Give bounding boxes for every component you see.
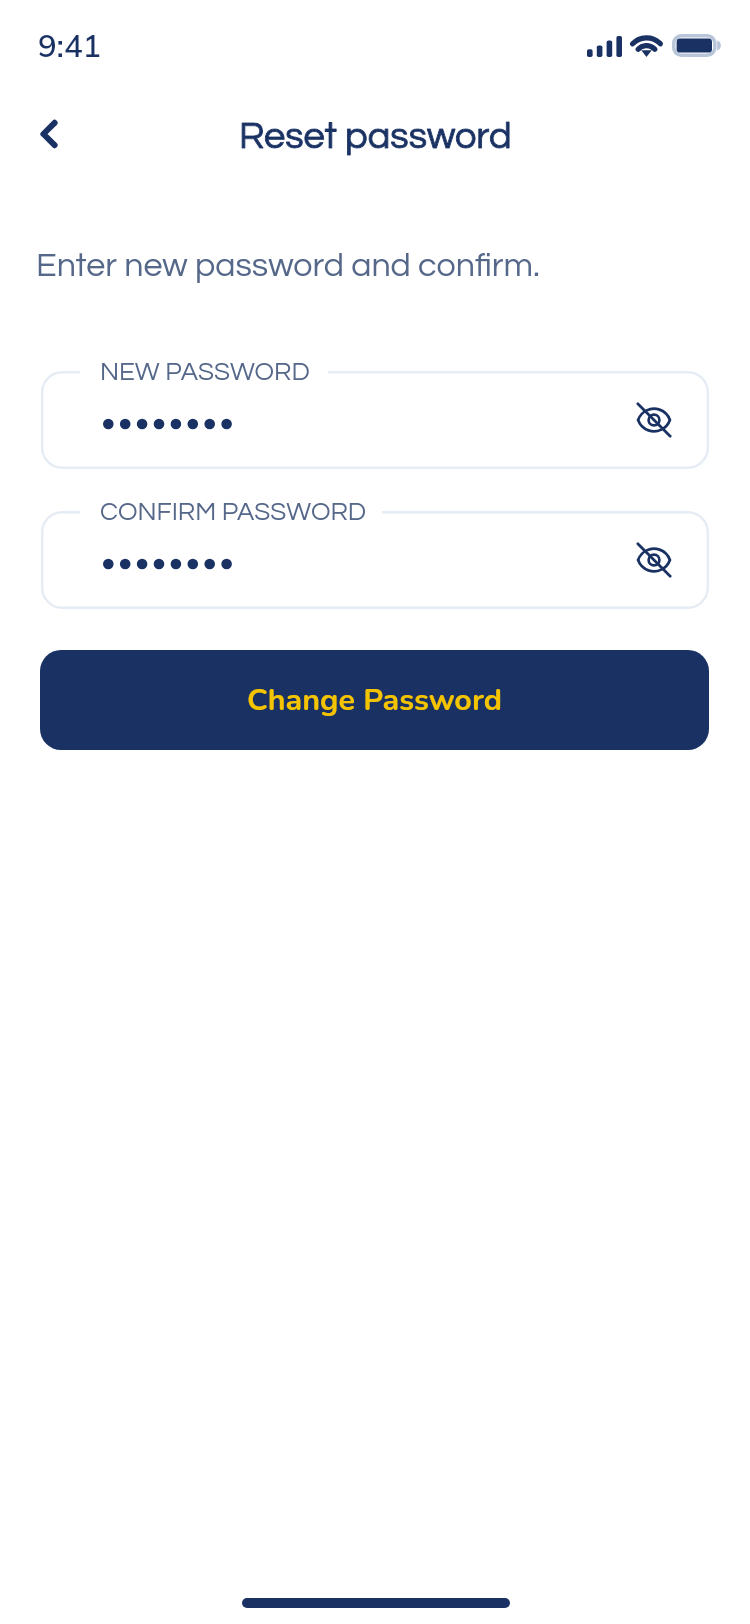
- staticText: Reset password: [239, 117, 512, 156]
- staticText: Enter new password and confirm.: [36, 248, 541, 283]
- button[interactable]: Back: [21, 106, 77, 162]
- button[interactable]: Change Password: [40, 650, 709, 750]
- staticText: Reset password: [239, 117, 512, 156]
- button[interactable]: Show password: [626, 392, 682, 448]
- button[interactable]: Show password: [41, 371, 709, 469]
- button[interactable]: Show password: [626, 532, 682, 588]
- button[interactable]: Show password: [41, 511, 709, 609]
- staticText: Change Password: [247, 679, 502, 721]
- staticText: 9:41: [38, 26, 102, 65]
- staticText: NEW PASSWORD: [100, 359, 310, 386]
- staticText: CONFIRM PASSWORD: [100, 499, 367, 526]
